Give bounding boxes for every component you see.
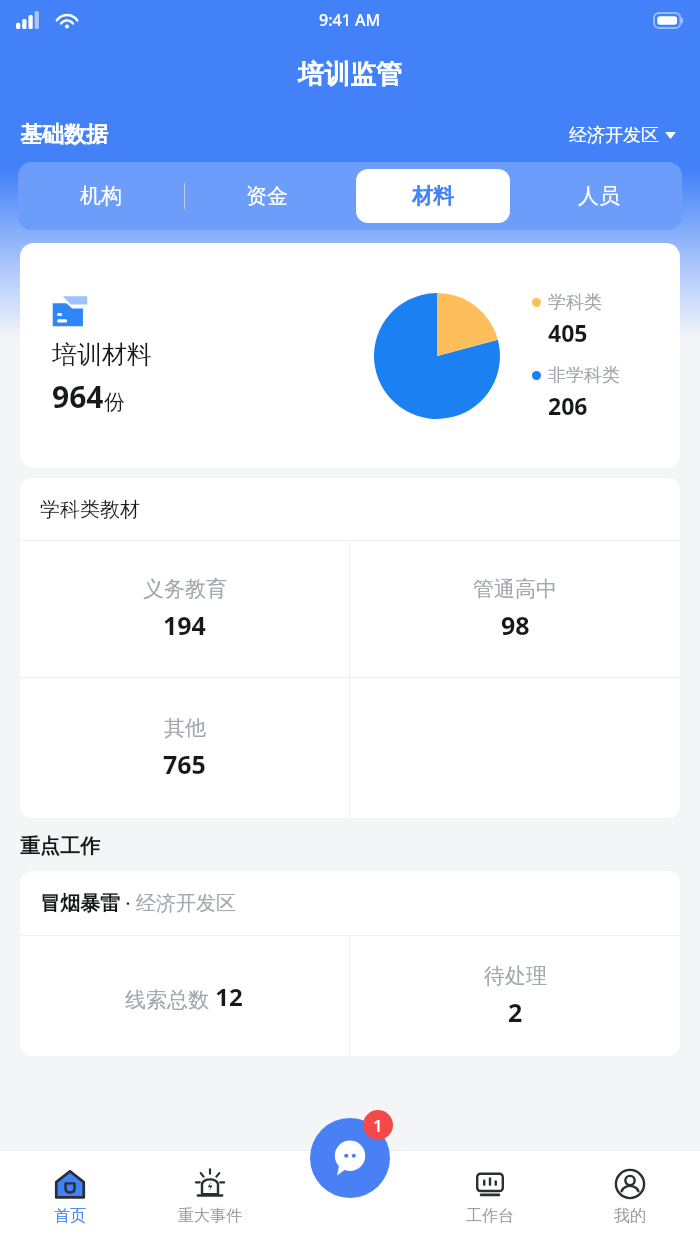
button[interactable]: 我的 xyxy=(560,1150,700,1244)
other: 材料 xyxy=(52,295,88,327)
staticText: 我的 xyxy=(614,1206,646,1226)
staticText: 学科类教材 xyxy=(40,497,140,522)
staticText: 12 xyxy=(209,980,243,1013)
staticText: 1 xyxy=(373,1114,383,1137)
staticText: 765 xyxy=(163,747,206,781)
staticText: 人员 xyxy=(578,183,620,209)
staticText: 98 xyxy=(501,608,530,642)
staticText: · xyxy=(120,890,136,917)
staticText: 工作台 xyxy=(466,1206,514,1226)
button[interactable]: 消息 xyxy=(310,1118,390,1198)
staticText: 培训材料 xyxy=(52,339,152,370)
staticText: 重点工作 xyxy=(20,834,100,859)
button[interactable]: 材料 xyxy=(20,243,680,468)
staticText: 管通高中 xyxy=(473,576,557,602)
button[interactable]: 机构 xyxy=(24,169,178,223)
staticText: 线索总数 xyxy=(125,987,209,1013)
button[interactable]: 管通高中 xyxy=(350,541,680,677)
button[interactable]: 经济开发区 xyxy=(565,120,680,151)
staticText: 冒烟暴雷 xyxy=(40,891,120,916)
staticText: 机构 xyxy=(80,183,122,209)
staticText: 材料 xyxy=(412,183,454,209)
staticText: 首页 xyxy=(54,1206,86,1226)
staticText: 份 xyxy=(104,389,125,415)
button[interactable]: 材料 xyxy=(356,169,510,223)
staticText: 964 xyxy=(52,376,104,417)
staticText: 经济开发区 xyxy=(136,891,236,916)
button[interactable]: 义务教育 xyxy=(20,541,349,677)
staticText: 资金 xyxy=(246,183,288,209)
staticText: 经济开发区 xyxy=(569,124,659,147)
staticText: 2 xyxy=(508,995,523,1029)
staticText: 非学科类 xyxy=(548,364,620,387)
staticText: 9:41 AM xyxy=(319,9,381,31)
staticText: 义务教育 xyxy=(143,576,227,602)
staticText: 学科类 xyxy=(548,291,602,314)
button[interactable]: 首页 xyxy=(0,1150,140,1244)
staticText: 培训监管 xyxy=(298,58,402,91)
button[interactable]: 人员 xyxy=(522,169,676,223)
staticText: 405 xyxy=(548,317,588,348)
staticText: 重大事件 xyxy=(178,1206,242,1226)
button[interactable]: 待处理 xyxy=(350,936,680,1056)
button[interactable]: 其他 xyxy=(20,678,349,818)
button[interactable]: 重大事件 xyxy=(140,1150,280,1244)
button[interactable]: 线索总数 xyxy=(20,936,349,1056)
button[interactable]: 资金 xyxy=(190,169,344,223)
staticText: 其他 xyxy=(164,715,206,741)
staticText: 待处理 xyxy=(484,963,547,989)
staticText: 206 xyxy=(548,390,588,421)
button[interactable]: 工作台 xyxy=(420,1150,560,1244)
staticText: 基础数据 xyxy=(20,121,108,149)
staticText: 194 xyxy=(163,608,206,642)
